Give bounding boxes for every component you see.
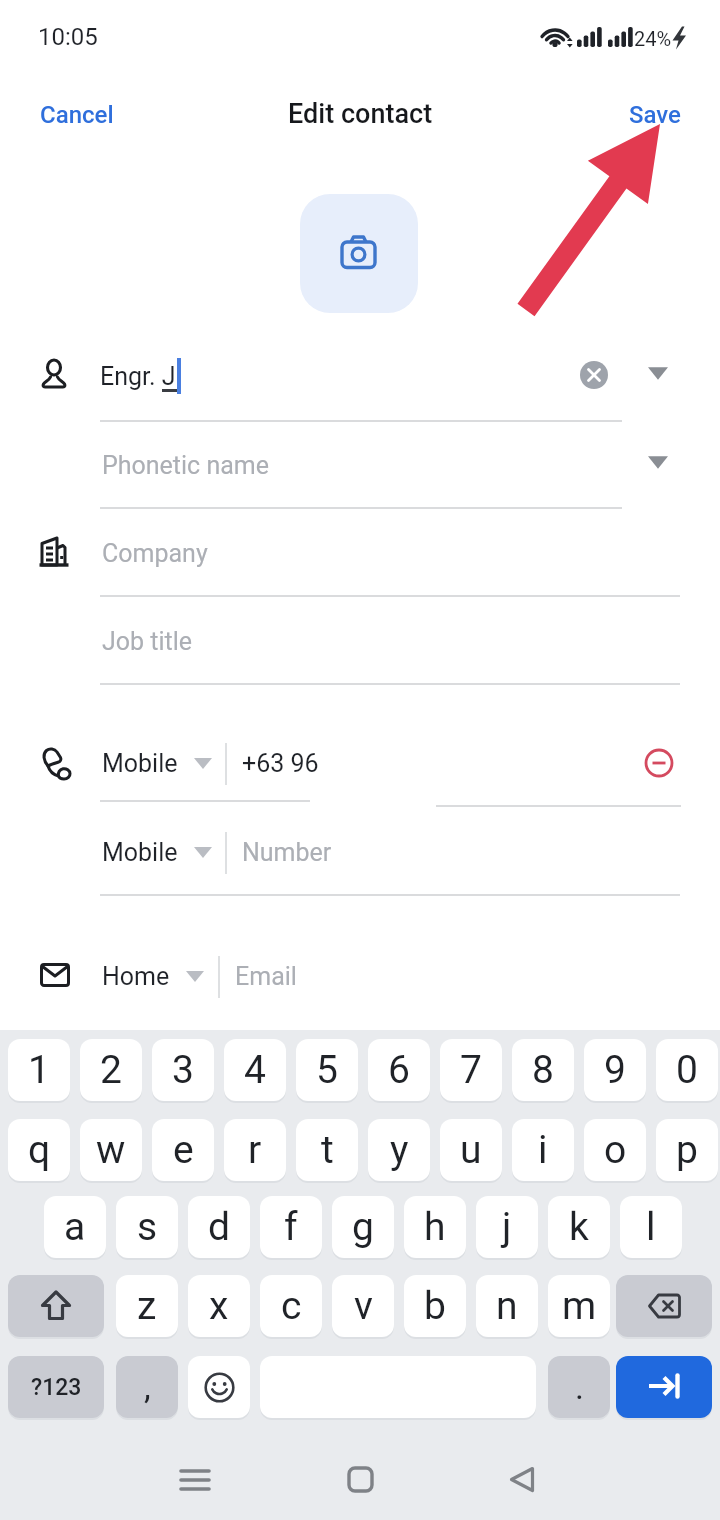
button[interactable]: i: [512, 1119, 574, 1181]
button[interactable]: p: [656, 1119, 718, 1181]
staticText: Save: [629, 101, 681, 129]
button[interactable]: a: [44, 1196, 106, 1258]
staticText: d: [208, 1204, 230, 1250]
button[interactable]: [616, 1356, 712, 1418]
staticText: Mobile: [102, 749, 178, 778]
staticText: +63 96: [242, 749, 319, 778]
staticText: k: [569, 1204, 589, 1250]
staticText: 5: [316, 1047, 338, 1093]
staticText: f: [284, 1204, 298, 1250]
staticText: Number: [242, 838, 332, 867]
button[interactable]: [8, 1275, 104, 1337]
button[interactable]: y: [368, 1119, 430, 1181]
button[interactable]: Save: [629, 99, 693, 131]
button[interactable]: o: [584, 1119, 646, 1181]
staticText: l: [646, 1204, 656, 1250]
staticText: 9: [604, 1047, 626, 1093]
button[interactable]: w: [80, 1119, 142, 1181]
button[interactable]: u: [440, 1119, 502, 1181]
staticText: 24%: [634, 27, 672, 50]
button[interactable]: Mobile: [102, 747, 222, 779]
staticText: a: [64, 1204, 86, 1250]
button[interactable]: ,: [116, 1356, 178, 1418]
staticText: n: [496, 1283, 518, 1329]
staticText: 4: [244, 1047, 266, 1093]
staticText: z: [137, 1283, 157, 1329]
staticText: j: [502, 1204, 512, 1250]
button[interactable]: [644, 748, 674, 778]
staticText: u: [460, 1127, 482, 1173]
button[interactable]: m: [548, 1275, 610, 1337]
staticText: y: [390, 1127, 409, 1173]
staticText: m: [562, 1283, 597, 1329]
staticText: q: [28, 1127, 51, 1173]
staticText: Phonetic name: [102, 451, 269, 480]
staticText: c: [281, 1283, 302, 1329]
button[interactable]: [300, 194, 418, 313]
button[interactable]: x: [188, 1275, 250, 1337]
button[interactable]: 4: [224, 1039, 286, 1101]
button[interactable]: c: [260, 1275, 322, 1337]
staticText: ?123: [31, 1374, 82, 1401]
button[interactable]: 3: [152, 1039, 214, 1101]
button[interactable]: g: [332, 1196, 394, 1258]
button[interactable]: z: [116, 1275, 178, 1337]
button[interactable]: n: [476, 1275, 538, 1337]
staticText: 1: [28, 1047, 50, 1093]
button[interactable]: v: [332, 1275, 394, 1337]
button[interactable]: j: [476, 1196, 538, 1258]
button[interactable]: b: [404, 1275, 466, 1337]
staticText: p: [676, 1127, 698, 1173]
button[interactable]: k: [548, 1196, 610, 1258]
button[interactable]: 7: [440, 1039, 502, 1101]
staticText: Cancel: [40, 101, 114, 129]
button[interactable]: Home: [102, 960, 212, 992]
button[interactable]: h: [404, 1196, 466, 1258]
button[interactable]: Cancel: [40, 99, 160, 131]
staticText: Email: [235, 962, 297, 991]
staticText: 10:05: [38, 23, 98, 51]
staticText: ,: [144, 1367, 151, 1407]
staticText: 0: [676, 1047, 698, 1093]
button[interactable]: Mobile: [102, 836, 222, 868]
button[interactable]: [580, 361, 608, 389]
staticText: Mobile: [102, 838, 178, 867]
staticText: Edit contact: [288, 98, 433, 130]
staticText: 3: [172, 1047, 194, 1093]
staticText: g: [352, 1204, 374, 1250]
button[interactable]: 9: [584, 1039, 646, 1101]
button[interactable]: .: [548, 1356, 610, 1418]
staticText: r: [248, 1127, 262, 1173]
button[interactable]: 6: [368, 1039, 430, 1101]
button[interactable]: q: [8, 1119, 70, 1181]
button[interactable]: d: [188, 1196, 250, 1258]
staticText: 2: [100, 1047, 122, 1093]
staticText: x: [209, 1283, 229, 1329]
button[interactable]: [188, 1356, 250, 1418]
button[interactable]: ?123: [8, 1356, 104, 1418]
staticText: i: [538, 1127, 548, 1173]
staticText: Job title: [102, 627, 193, 656]
staticText: Home: [102, 962, 170, 991]
staticText: s: [137, 1204, 158, 1250]
button[interactable]: e: [152, 1119, 214, 1181]
button[interactable]: r: [224, 1119, 286, 1181]
staticText: w: [96, 1127, 126, 1173]
button[interactable]: 5: [296, 1039, 358, 1101]
button[interactable]: s: [116, 1196, 178, 1258]
staticText: h: [424, 1204, 446, 1250]
button[interactable]: l: [620, 1196, 682, 1258]
staticText: b: [424, 1283, 446, 1329]
button[interactable]: [616, 1275, 712, 1337]
button[interactable]: t: [296, 1119, 358, 1181]
button[interactable]: f: [260, 1196, 322, 1258]
staticText: Engr. J: [100, 362, 176, 391]
button[interactable]: 1: [8, 1039, 70, 1101]
button[interactable]: 2: [80, 1039, 142, 1101]
button[interactable]: 0: [656, 1039, 718, 1101]
staticText: v: [354, 1283, 373, 1329]
staticText: 7: [460, 1047, 482, 1093]
button[interactable]: 8: [512, 1039, 574, 1101]
staticText: 6: [388, 1047, 410, 1093]
